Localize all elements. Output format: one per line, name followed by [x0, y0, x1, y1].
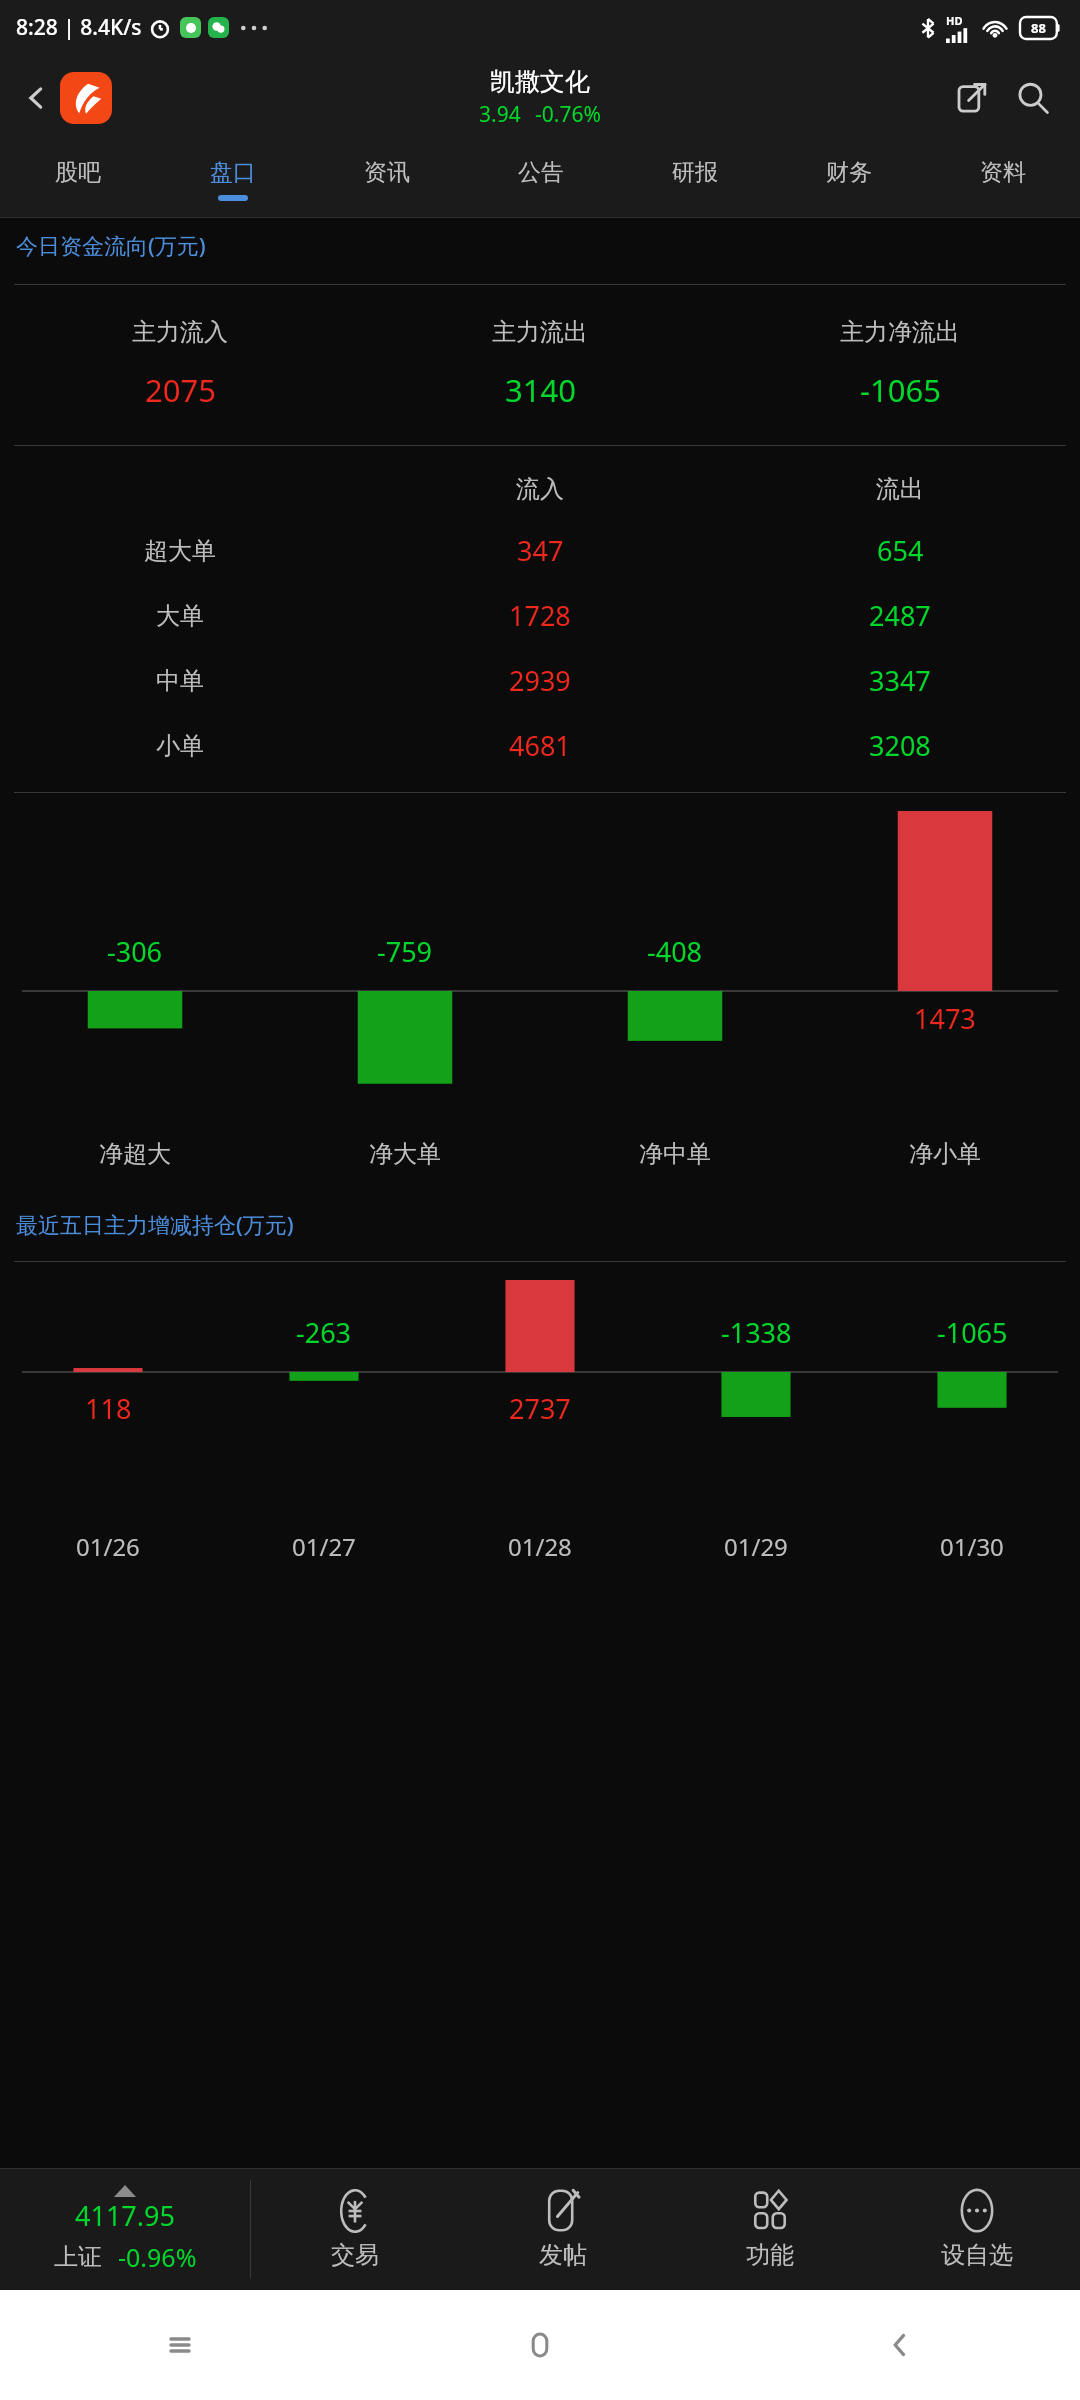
button[interactable]: 公告 [464, 140, 618, 218]
other: App logo [60, 72, 112, 124]
staticText: 01/30 [940, 1530, 1004, 1563]
staticText: 发帖 [539, 2240, 587, 2270]
staticText: 118 [85, 1390, 132, 1427]
button[interactable]: 交易 [251, 2168, 459, 2290]
button[interactable]: 设自选 [873, 2168, 1080, 2290]
staticText: 3208 [869, 727, 931, 764]
staticText: 功能 [746, 2240, 794, 2270]
staticText: 4117.95 [75, 2197, 175, 2234]
staticText: HD [946, 13, 963, 28]
staticText: 设自选 [941, 2240, 1013, 2270]
staticText: 主力流入 [132, 317, 228, 347]
staticText: 1728 [509, 597, 571, 634]
staticText: 净大单 [369, 1139, 441, 1169]
button[interactable]: Share [944, 71, 998, 125]
staticText: 3347 [869, 662, 931, 699]
staticText: 净中单 [639, 1139, 711, 1169]
staticText: 347 [517, 532, 564, 569]
staticText: 中单 [156, 666, 204, 696]
staticText: 流入 [516, 474, 564, 504]
staticText: 超大单 [144, 536, 216, 566]
staticText: -759 [377, 933, 433, 970]
staticText: 凯撒文化 [490, 66, 590, 97]
staticText: 3.94 [479, 100, 521, 129]
button[interactable]: 财务 [772, 140, 926, 218]
staticText: 小单 [156, 731, 204, 761]
staticText: 净超大 [99, 1139, 171, 1169]
staticText: 01/27 [292, 1530, 356, 1563]
staticText: 8:28 | 8.4K/s [16, 13, 142, 42]
staticText: 净小单 [909, 1139, 981, 1169]
staticText: 主力净流出 [840, 317, 960, 347]
staticText: -1338 [721, 1314, 792, 1351]
staticText: 资料 [980, 158, 1026, 187]
other: Back [14, 76, 58, 120]
button[interactable]: 发帖 [459, 2168, 666, 2290]
staticText: 2939 [509, 662, 571, 699]
staticText: 01/26 [76, 1530, 140, 1563]
staticText: -263 [296, 1314, 352, 1351]
staticText: 公告 [518, 158, 564, 187]
button[interactable]: Back [720, 2290, 1080, 2400]
staticText: -306 [107, 933, 163, 970]
button[interactable]: 功能 [666, 2168, 873, 2290]
button[interactable]: Home [360, 2290, 720, 2400]
staticText: 流出 [876, 474, 924, 504]
staticText: 2737 [509, 1390, 571, 1427]
staticText: 01/28 [508, 1530, 572, 1563]
button[interactable]: 资料 [926, 140, 1080, 218]
staticText: 交易 [331, 2240, 379, 2270]
button[interactable]: 资讯 [310, 140, 464, 218]
staticText: 2487 [869, 597, 931, 634]
staticText: -0.96% [118, 2240, 197, 2274]
staticText: 654 [877, 532, 924, 569]
button[interactable]: 股吧 [0, 140, 155, 218]
staticText: 资讯 [364, 158, 410, 187]
staticText: -0.76% [535, 100, 601, 129]
staticText: 大单 [156, 601, 204, 631]
button[interactable]: Back [14, 72, 112, 124]
staticText: 研报 [672, 158, 718, 187]
staticText: 股吧 [55, 158, 101, 187]
staticText: 盘口 [210, 158, 256, 187]
staticText: -408 [647, 933, 703, 970]
staticText: 最近五日主力增减持仓(万元) [16, 1209, 294, 1239]
staticText: 主力流出 [492, 317, 588, 347]
staticText: 01/29 [724, 1530, 788, 1563]
staticText: 88 [1031, 19, 1046, 37]
button[interactable]: 4117.95 [0, 2168, 250, 2290]
staticText: 上证 [54, 2242, 102, 2272]
button[interactable]: Recent apps [0, 2290, 360, 2400]
staticText: 今日资金流向(万元) [16, 230, 206, 260]
staticText: 4681 [509, 727, 571, 764]
staticText: 财务 [826, 158, 872, 187]
button[interactable]: 研报 [618, 140, 772, 218]
staticText: -1065 [860, 369, 941, 411]
staticText: 1473 [914, 1000, 976, 1037]
staticText: 3140 [505, 369, 576, 411]
button[interactable]: Search [1006, 71, 1060, 125]
staticText: -1065 [937, 1314, 1008, 1351]
button[interactable]: 盘口 [155, 140, 310, 218]
staticText: 2075 [145, 369, 216, 411]
